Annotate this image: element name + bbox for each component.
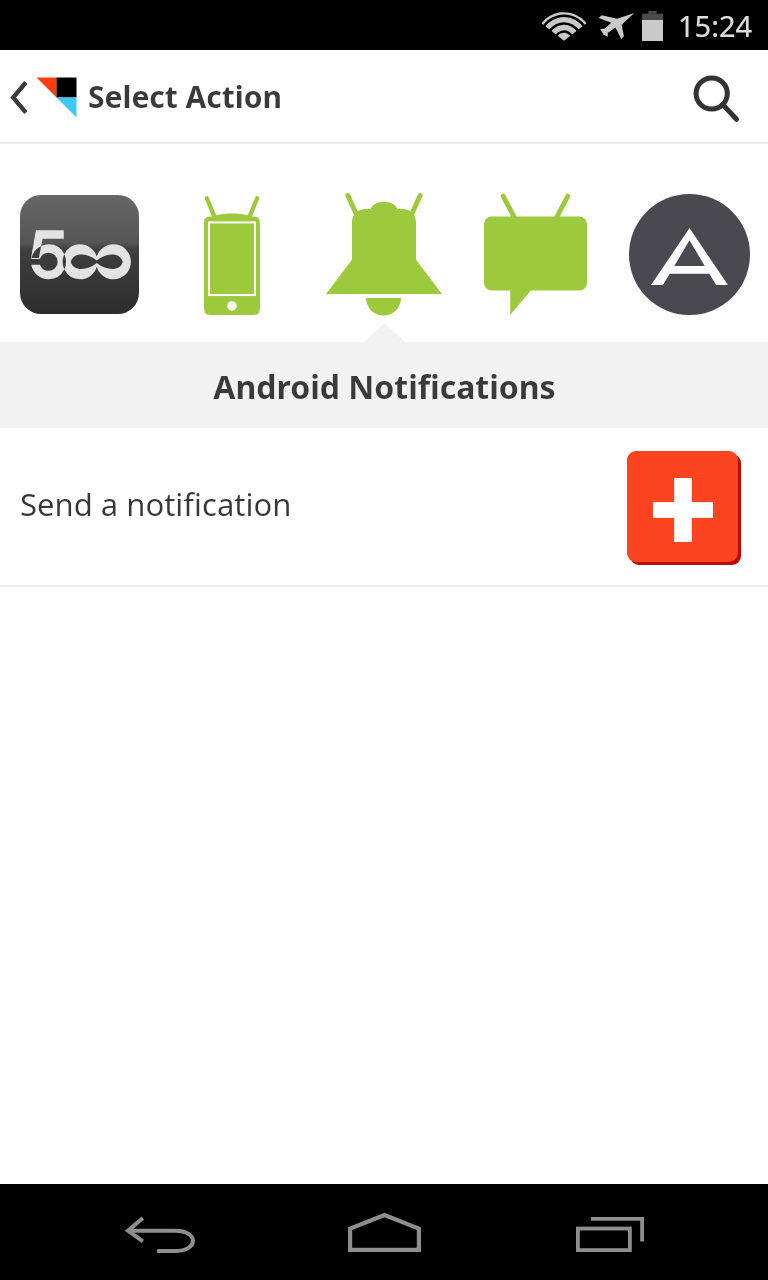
staticText: 15:24 — [678, 6, 753, 45]
button[interactable]: 500px — [0, 144, 153, 342]
staticText: Android Notifications — [213, 365, 556, 409]
button[interactable]: Send a notification — [0, 428, 768, 587]
button[interactable]: Home — [304, 1184, 464, 1280]
button[interactable]: Back — [80, 1184, 240, 1280]
button[interactable]: Android Device — [153, 144, 306, 342]
button[interactable]: Analytics — [614, 144, 768, 342]
button[interactable]: Android Messages — [460, 144, 614, 342]
button[interactable]: Navigate up — [0, 50, 86, 144]
button[interactable]: Android Notifications — [306, 144, 460, 342]
staticText: Send a notification — [20, 483, 292, 525]
staticText: Select Action — [88, 76, 283, 117]
button[interactable]: Search — [674, 50, 768, 144]
button[interactable]: Recent apps — [530, 1184, 690, 1280]
